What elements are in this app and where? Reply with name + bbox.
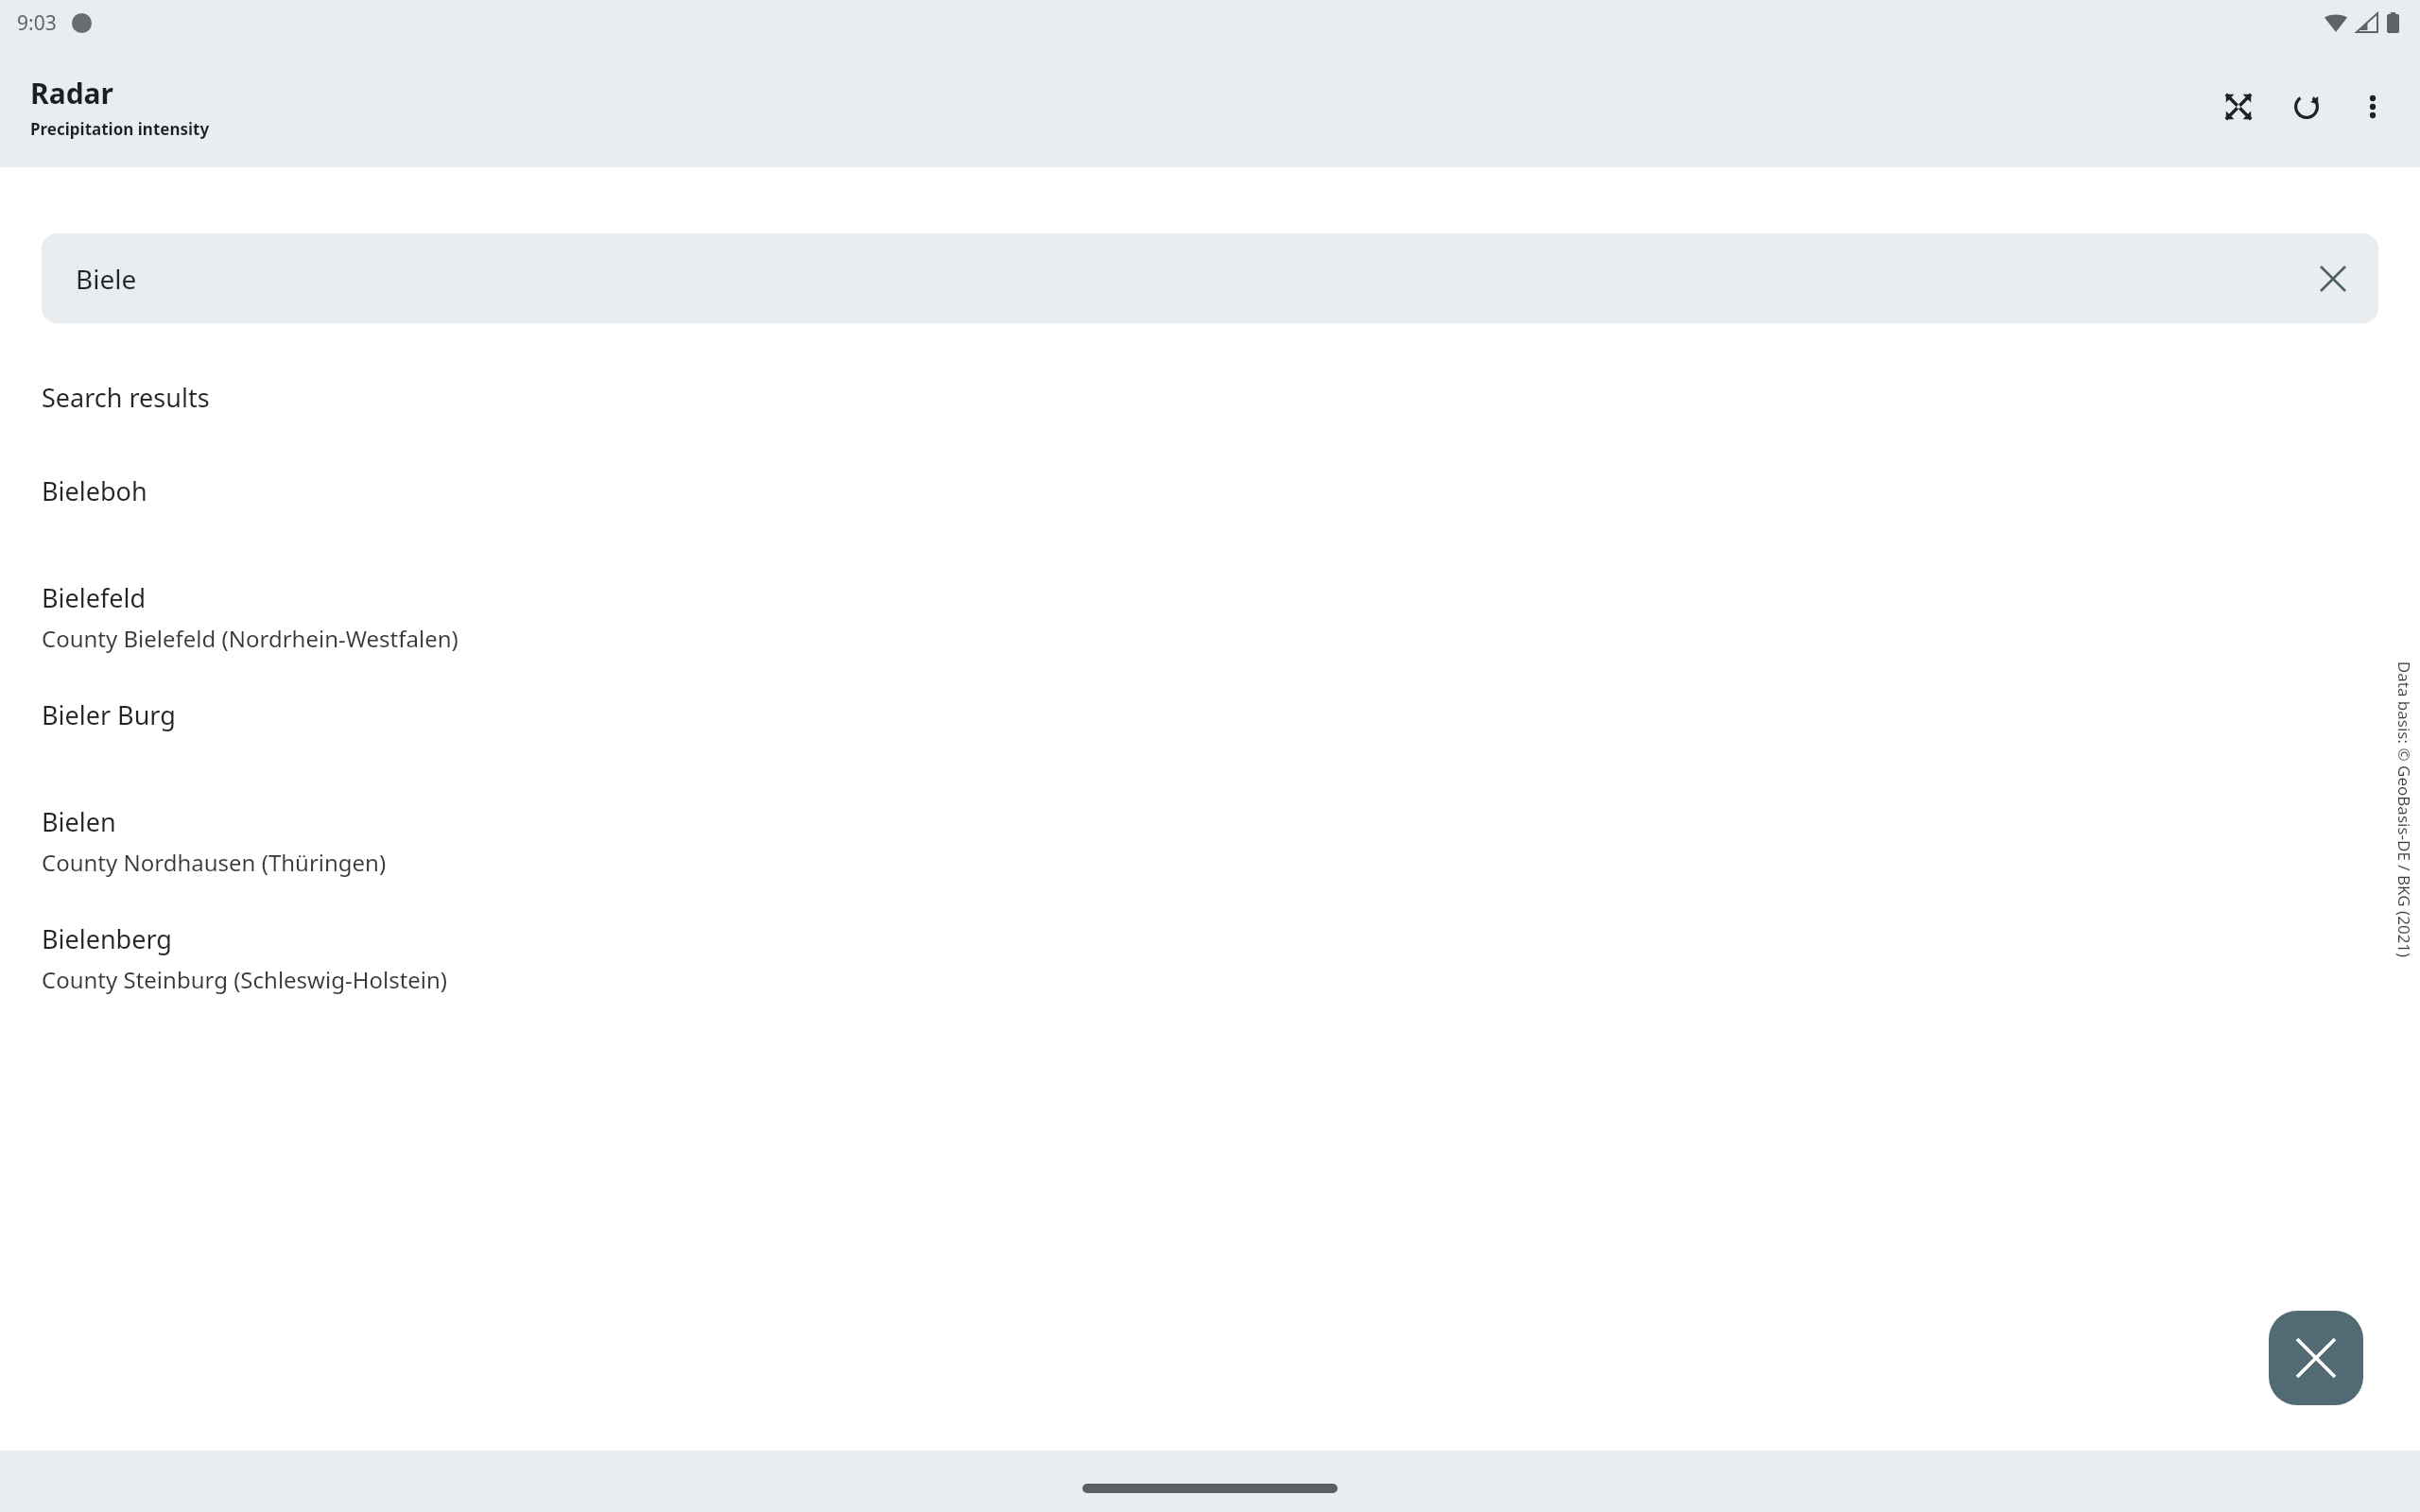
- staticText: Precipitation intensity: [30, 118, 210, 140]
- button[interactable]: Bielen: [0, 787, 2420, 904]
- staticText: Radar: [30, 74, 113, 112]
- staticText: County Steinburg (Schleswig-Holstein): [42, 964, 448, 995]
- button[interactable]: Bieler Burg: [0, 680, 2420, 787]
- button[interactable]: Biele: [42, 233, 2378, 323]
- staticText: Bieleboh: [42, 473, 147, 508]
- button[interactable]: Bieleboh: [0, 456, 2420, 563]
- button[interactable]: More options: [2344, 78, 2401, 135]
- button[interactable]: Bielenberg: [0, 904, 2420, 1022]
- staticText: County Nordhausen (Thüringen): [42, 847, 387, 878]
- staticText: Bielefeld: [42, 580, 147, 615]
- staticText: 9:03: [17, 9, 57, 37]
- staticText: Bielenberg: [42, 921, 172, 956]
- staticText: Search results: [42, 380, 210, 415]
- staticText: County Bielefeld (Nordrhein-Westfalen): [42, 623, 458, 654]
- button[interactable]: Close search: [2269, 1311, 2363, 1405]
- button[interactable]: Clear search: [2308, 254, 2358, 303]
- staticText: Bielen: [42, 804, 116, 839]
- staticText: Bieler Burg: [42, 697, 176, 732]
- staticText: Biele: [76, 261, 137, 297]
- button[interactable]: Fullscreen: [2210, 78, 2267, 135]
- button[interactable]: Refresh: [2278, 78, 2335, 135]
- button[interactable]: Bielefeld: [0, 563, 2420, 680]
- staticText: Data basis: © GeoBasis-DE / BKG (2021): [2393, 661, 2415, 958]
